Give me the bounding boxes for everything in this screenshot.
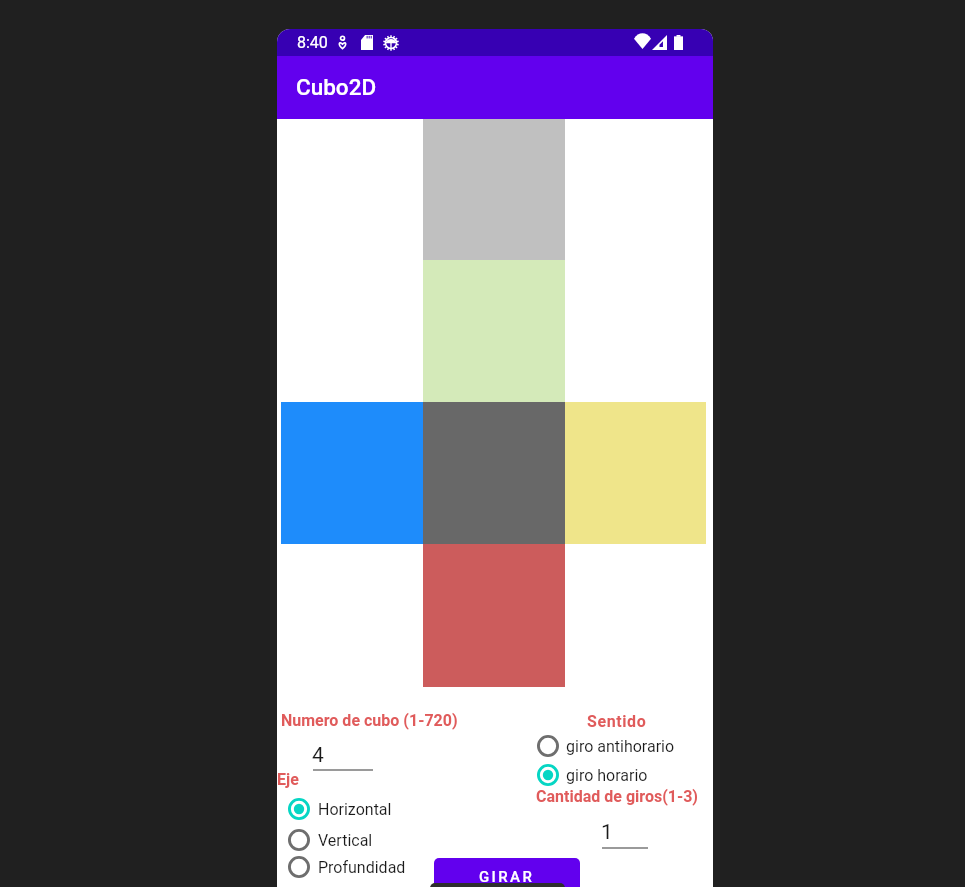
button[interactable]: giro horario (532, 760, 648, 790)
staticText: Cubo2D (296, 74, 377, 100)
other: Battery (674, 35, 683, 50)
button[interactable]: Numero de cubo (313, 741, 373, 771)
staticText: GIRAR (479, 868, 535, 886)
other: Do not disturb (338, 36, 347, 49)
button[interactable]: Profundidad (283, 852, 406, 882)
button[interactable]: Cantidad de giros (602, 818, 648, 849)
staticText: Sentido (587, 712, 647, 731)
staticText: Horizontal (318, 800, 392, 819)
staticText: Eje (277, 770, 299, 789)
button[interactable]: giro antihorario (532, 731, 675, 761)
button[interactable]: Horizontal (283, 794, 392, 824)
staticText: 1 (601, 820, 613, 845)
other: Developer settings (383, 35, 399, 51)
staticText: giro horario (566, 766, 648, 785)
staticText: Profundidad (318, 858, 406, 877)
other: Wi-Fi (634, 35, 651, 49)
button[interactable]: Vertical (283, 825, 373, 855)
other: SD card (361, 35, 373, 50)
other: Mobile signal (652, 35, 667, 50)
staticText: 8:40 (297, 33, 328, 52)
staticText: giro antihorario (566, 737, 675, 756)
staticText: Cantidad de giros(1-3) (536, 787, 698, 806)
button[interactable]: GIRAR (434, 858, 580, 887)
staticText: Vertical (318, 831, 373, 850)
staticText: 4 (312, 743, 324, 768)
staticText: Numero de cubo (1-720) (281, 711, 458, 730)
